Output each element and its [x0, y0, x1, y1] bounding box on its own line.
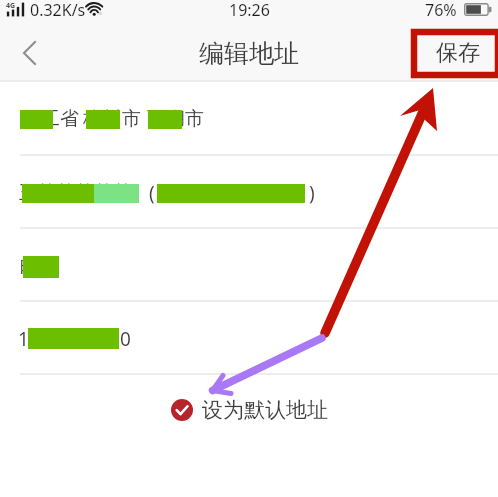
staticText: 0 [256, 180, 267, 206]
staticText: 保存 [436, 39, 480, 67]
staticText: 0 [234, 180, 245, 206]
button[interactable]: 1 [0, 302, 498, 375]
staticText: 3 [168, 180, 179, 206]
staticText: 0.32K/s [30, 0, 86, 21]
staticText: 市 [122, 107, 141, 131]
staticText: 8 [84, 326, 95, 352]
staticText: 湖 [166, 107, 185, 131]
staticText: 8 [29, 326, 40, 352]
staticText: 0 [267, 180, 278, 206]
staticText: 杭 [83, 107, 102, 131]
staticText: 0 [278, 180, 289, 206]
staticText: 0 [289, 180, 300, 206]
staticText: 编 [39, 254, 58, 278]
button[interactable]: 王 [0, 156, 498, 229]
staticText: 19:26 [229, 0, 270, 21]
staticText: 编辑地址 [199, 38, 299, 69]
button[interactable]: 工 [0, 82, 498, 156]
staticText: 0 [190, 180, 201, 206]
staticText: 0 [223, 180, 234, 206]
staticText: 某 [94, 181, 113, 205]
button[interactable]: 保存 [436, 40, 480, 68]
staticText: 某 [37, 181, 56, 205]
staticText: 1 [157, 180, 168, 206]
staticText: 8 [73, 326, 84, 352]
staticText: 0 [201, 180, 212, 206]
staticText: 76% [425, 0, 457, 21]
staticText: 8 [106, 326, 117, 352]
staticText: 1 [18, 326, 29, 352]
staticText: ) [309, 180, 315, 206]
staticText: 4G [6, 1, 16, 11]
staticText: 0 [212, 180, 223, 206]
staticText: ( [149, 180, 155, 206]
staticText: 某 [75, 181, 94, 205]
staticText: 市 [185, 107, 204, 131]
staticText: 某 [113, 181, 132, 205]
staticText: 8 [62, 326, 73, 352]
staticText: 8 [179, 180, 190, 206]
staticText: 工 [41, 107, 60, 131]
staticText: 王 [19, 181, 38, 205]
staticText: 0 [120, 326, 131, 352]
staticText: 0 [245, 180, 256, 206]
staticText: 设为默认地址 [202, 397, 328, 423]
button[interactable]: Back [0, 28, 48, 80]
staticText: 8 [40, 326, 51, 352]
staticText: 西 [147, 107, 166, 131]
staticText: 邮 [20, 254, 39, 278]
button[interactable]: 设为默认地址 [171, 397, 328, 423]
button[interactable]: 邮 [0, 229, 498, 302]
staticText: 省 [60, 107, 79, 131]
staticText: 州 [102, 107, 121, 131]
staticText: 8 [51, 326, 62, 352]
staticText: 8 [95, 326, 106, 352]
staticText: 某 [56, 181, 75, 205]
